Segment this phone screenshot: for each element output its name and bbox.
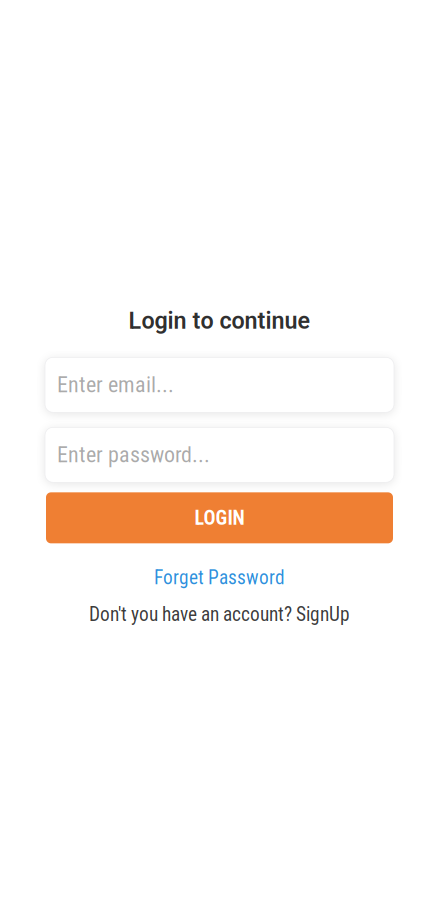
staticText: Enter password... — [57, 442, 210, 468]
button[interactable]: Don't you have an account? SignUp — [89, 603, 350, 626]
staticText: Enter email... — [57, 372, 174, 398]
button[interactable]: Enter password... — [45, 427, 394, 482]
button[interactable]: Forget Password — [154, 566, 285, 589]
button[interactable]: Enter email... — [45, 357, 394, 412]
staticText: Login to continue — [128, 307, 310, 334]
staticText: Don't you have an account? SignUp — [89, 603, 350, 626]
staticText: Forget Password — [154, 566, 285, 589]
staticText: LOGIN — [194, 506, 244, 529]
button[interactable]: LOGIN — [46, 492, 393, 543]
